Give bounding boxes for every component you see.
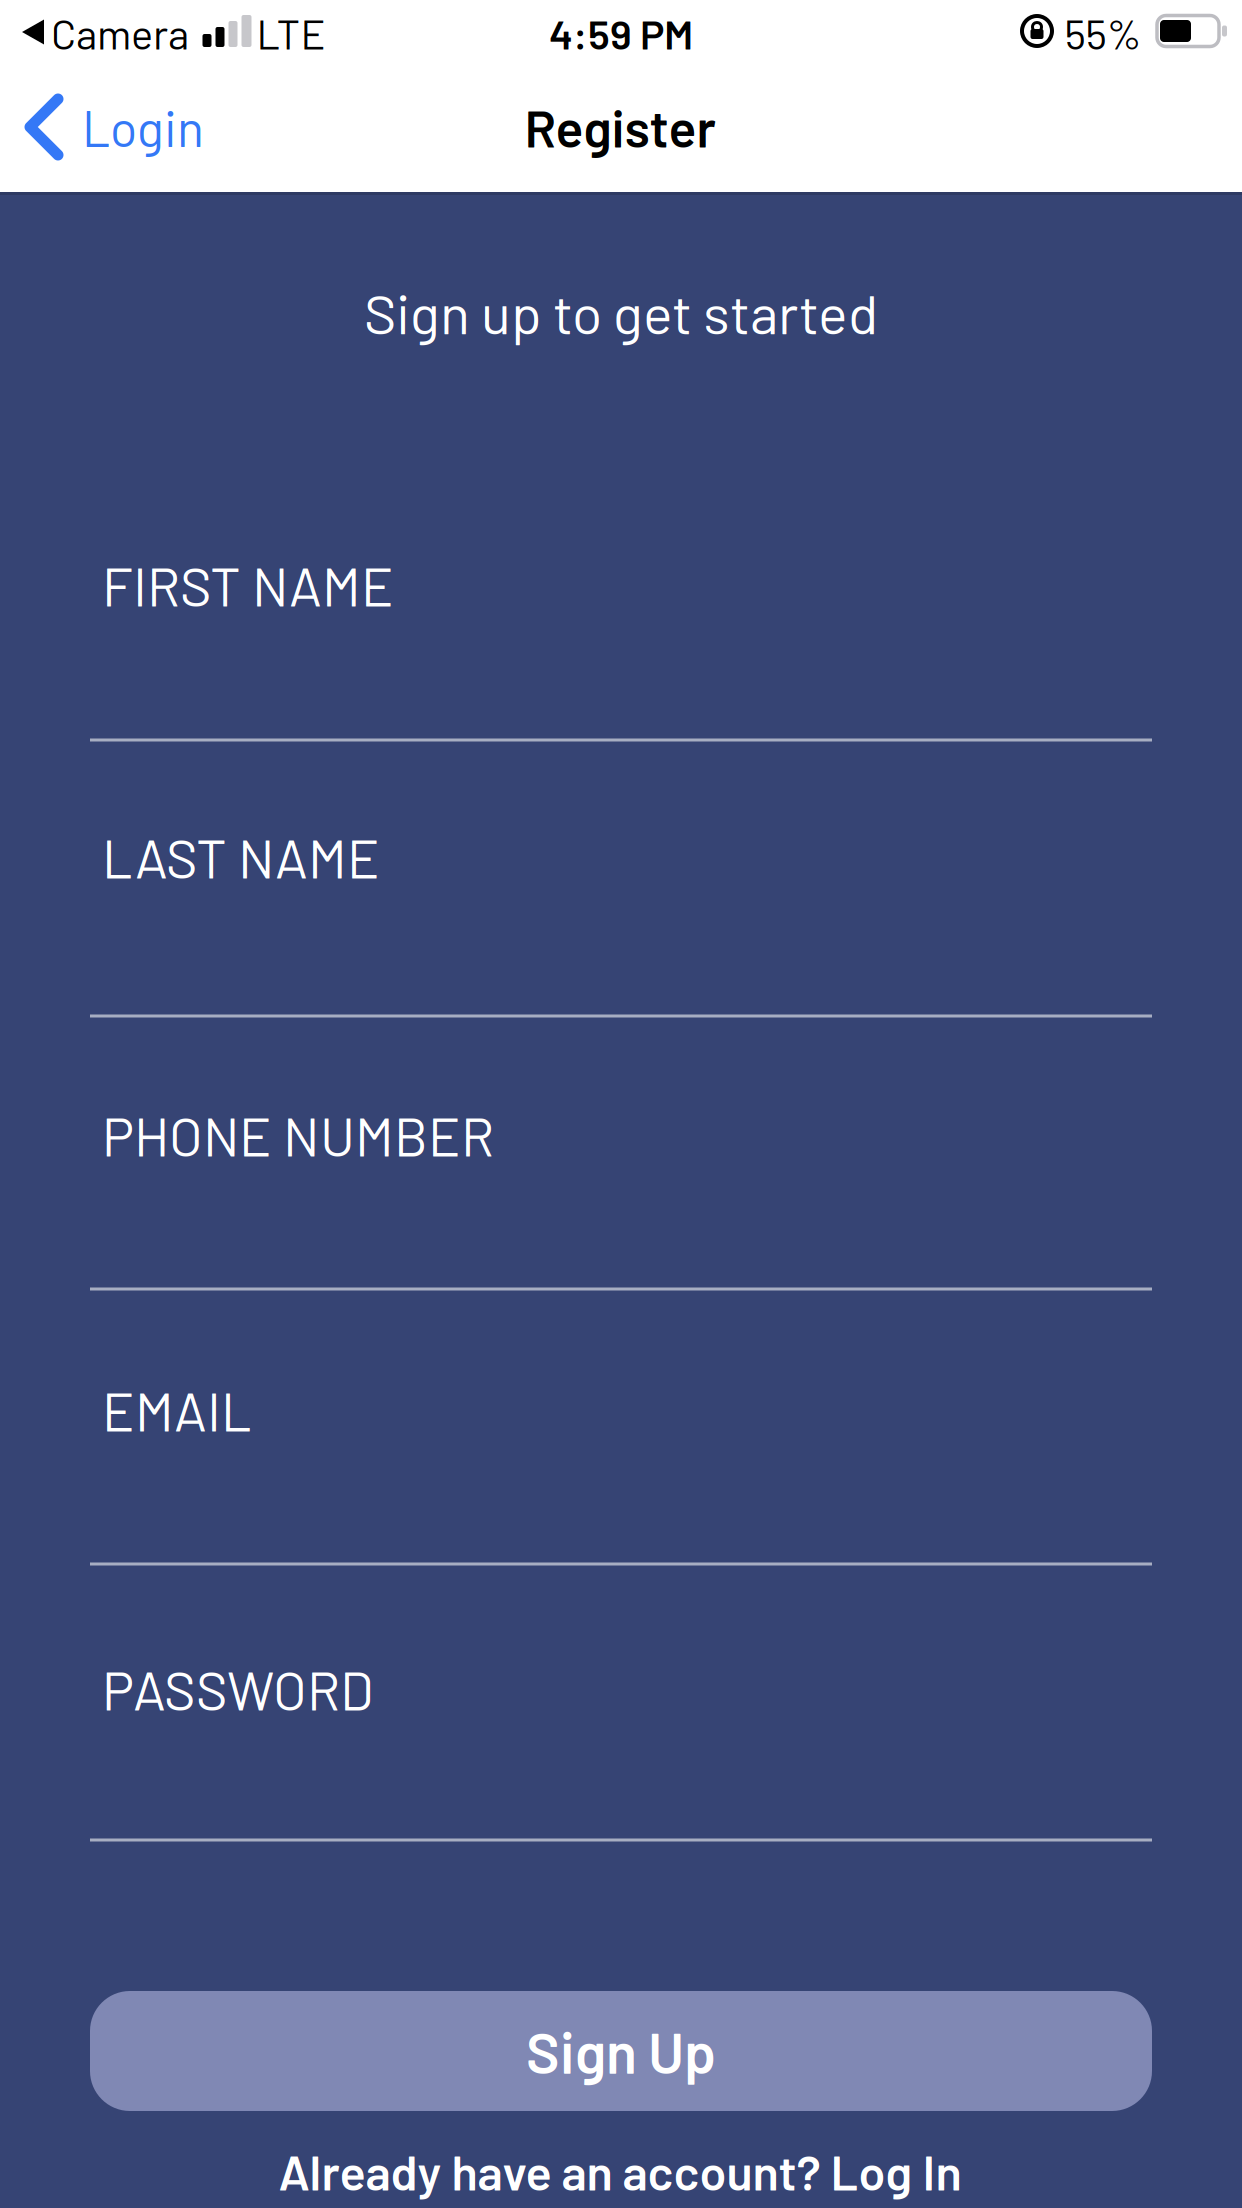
staticText: Already have an account? Log In xyxy=(278,2142,961,2200)
button[interactable]: Login xyxy=(30,71,204,183)
staticText: FIRST NAME xyxy=(102,552,394,617)
staticText: LTE xyxy=(256,8,325,58)
staticText: LAST NAME xyxy=(102,824,380,889)
button[interactable]: PHONE NUMBER xyxy=(90,1102,1152,1290)
staticText: Camera xyxy=(51,8,189,58)
staticText: Login xyxy=(82,97,204,157)
button[interactable]: FIRST NAME xyxy=(90,552,1152,741)
staticText: Register xyxy=(524,96,715,158)
button[interactable]: EMAIL xyxy=(90,1377,1152,1565)
button[interactable]: PASSWORD xyxy=(90,1656,1152,1841)
staticText: 55% xyxy=(1064,8,1141,58)
button[interactable]: LAST NAME xyxy=(90,824,1152,1017)
staticText: Sign Up xyxy=(526,2017,716,2085)
staticText: EMAIL xyxy=(102,1377,252,1442)
button[interactable]: Already have an account? Log In xyxy=(278,2142,961,2200)
staticText: PASSWORD xyxy=(102,1656,373,1721)
staticText: PHONE NUMBER xyxy=(102,1102,494,1167)
staticText: 4:59 PM xyxy=(549,8,693,58)
button[interactable]: Sign Up xyxy=(90,1991,1152,2111)
staticText: Sign up to get started xyxy=(364,279,878,345)
